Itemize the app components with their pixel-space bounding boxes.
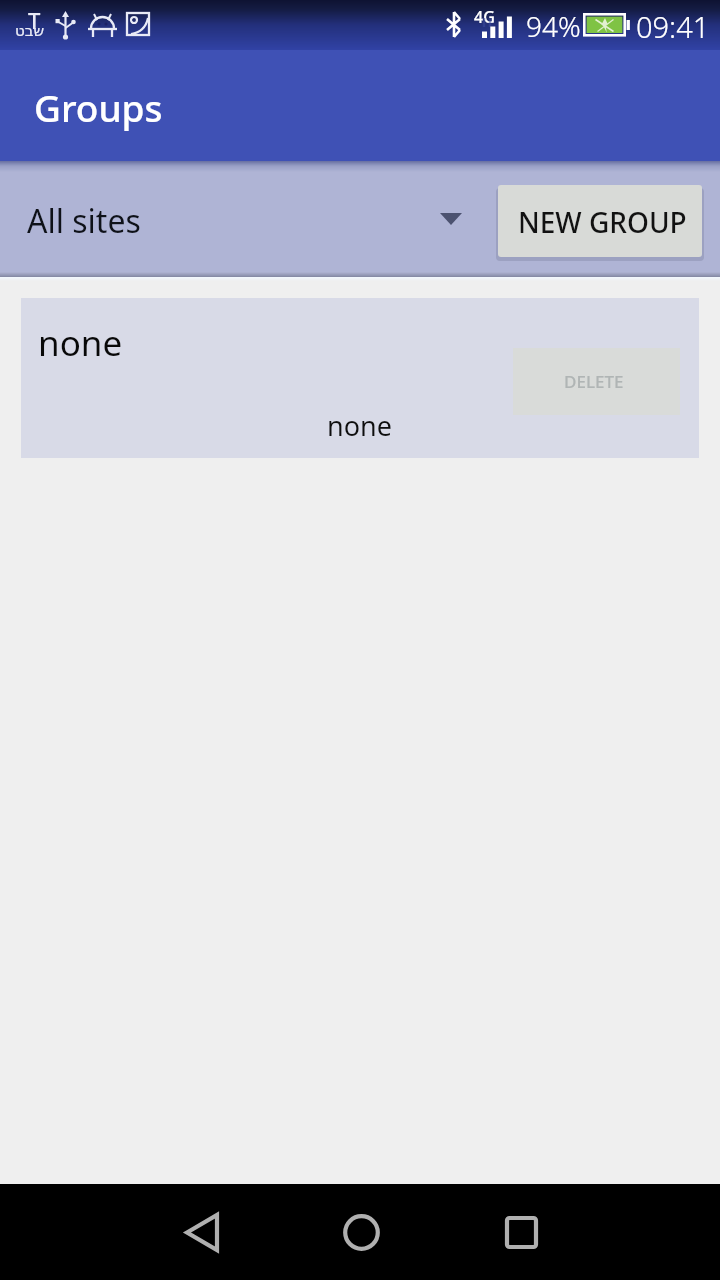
staticText: none: [327, 407, 392, 444]
button[interactable]: Home: [313, 1184, 409, 1280]
button[interactable]: NEW GROUP: [498, 185, 702, 257]
staticText: שבט: [15, 22, 45, 39]
staticText: DELETE: [564, 370, 624, 393]
staticText: T: [28, 5, 41, 35]
button[interactable]: Recents: [473, 1184, 569, 1280]
staticText: 09:41: [636, 7, 710, 46]
staticText: 4G: [474, 6, 495, 28]
button[interactable]: Back: [154, 1184, 250, 1280]
staticText: All sites: [27, 199, 141, 243]
button[interactable]: All sites: [0, 161, 478, 277]
staticText: 94%: [526, 7, 581, 45]
button[interactable]: DELETE: [513, 348, 680, 415]
button[interactable]: none: [21, 298, 699, 458]
staticText: none: [38, 319, 123, 367]
staticText: Groups: [34, 82, 163, 132]
staticText: NEW GROUP: [518, 203, 687, 241]
